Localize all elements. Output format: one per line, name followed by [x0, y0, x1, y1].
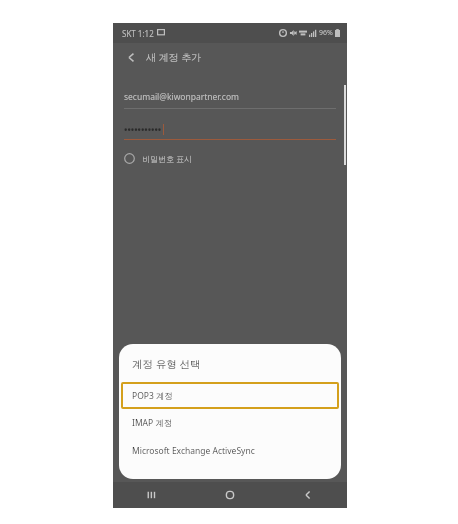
- staticText: 96%: [319, 28, 333, 38]
- button[interactable]: secumail@kiwonpartner.com: [124, 91, 336, 109]
- button[interactable]: IMAP 계정: [119, 409, 341, 437]
- button[interactable]: POP3 계정: [121, 382, 339, 409]
- button[interactable]: Home: [191, 482, 269, 508]
- staticText: Microsoft Exchange ActiveSync: [132, 445, 255, 457]
- button[interactable]: Recents: [113, 482, 191, 508]
- staticText: secumail@kiwonpartner.com: [124, 91, 239, 103]
- staticText: •••••••••••: [124, 123, 162, 135]
- button[interactable]: 비밀번호 표시: [124, 153, 193, 164]
- staticText: POP3 계정: [132, 390, 173, 402]
- staticText: 계정 유형 선택: [132, 357, 201, 371]
- staticText: SKT 1:12: [122, 28, 154, 39]
- staticText: IMAP 계정: [132, 417, 173, 429]
- button[interactable]: Back: [122, 48, 140, 66]
- button[interactable]: •••••••••••: [124, 123, 336, 140]
- button[interactable]: Back: [269, 482, 347, 508]
- staticText: 비밀번호 표시: [142, 153, 193, 164]
- button[interactable]: Microsoft Exchange ActiveSync: [119, 437, 341, 465]
- staticText: 새 계정 추가: [146, 50, 202, 64]
